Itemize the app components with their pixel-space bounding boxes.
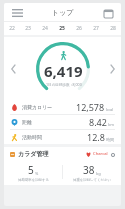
button[interactable]: 22 <box>4 22 20 35</box>
staticText: 活動時間 <box>22 134 42 140</box>
staticText: Charcal <box>93 151 108 157</box>
staticText: 27 <box>93 25 99 32</box>
staticText: 消費カロリー <box>22 104 53 110</box>
staticText: 28 <box>110 25 116 32</box>
button[interactable]: Menu <box>9 5 25 21</box>
staticText: km <box>108 122 114 127</box>
staticText: 体重を記録してください <box>73 178 111 182</box>
staticText: 23 <box>25 25 31 32</box>
button[interactable]: 23 <box>20 22 36 35</box>
staticText: 22 <box>9 25 15 32</box>
staticText: kg <box>96 171 101 176</box>
staticText: カラダ管理 <box>18 150 49 158</box>
button[interactable]: Next day <box>106 63 118 75</box>
staticText: kcal <box>106 107 114 112</box>
button[interactable]: 5 <box>4 161 62 183</box>
staticText: トップ <box>52 8 74 17</box>
button[interactable]: カラダ管理 <box>4 147 121 161</box>
button[interactable]: 24 <box>36 22 53 35</box>
staticText: 8.42 <box>89 116 107 128</box>
button[interactable]: 38 <box>63 161 121 183</box>
button[interactable]: 活動時間 <box>4 130 121 144</box>
button[interactable]: 26 <box>70 22 87 35</box>
staticText: 12,578 <box>76 101 105 113</box>
staticText: 6,419 <box>44 61 83 81</box>
staticText: 26 <box>76 25 82 32</box>
button[interactable]: 消費カロリー <box>4 100 121 114</box>
staticText: 距離 <box>22 119 32 125</box>
button[interactable]: Previous day <box>7 63 19 75</box>
button[interactable]: 距離 <box>4 115 121 129</box>
staticText: 25 <box>59 25 65 32</box>
staticText: 5 <box>28 163 34 177</box>
staticText: 1日の目標歩数 : 8,000 <box>46 82 82 87</box>
staticText: 体脂肪率を記録する <box>18 178 49 182</box>
button[interactable]: 27 <box>87 22 104 35</box>
staticText: 38 <box>83 163 95 177</box>
staticText: 時間 <box>106 137 114 142</box>
staticText: 12.8 <box>87 131 105 143</box>
staticText: 24 <box>42 25 48 32</box>
button[interactable]: Calendar <box>100 5 116 21</box>
button[interactable]: Settings <box>110 152 115 157</box>
staticText: % <box>35 171 39 176</box>
button[interactable]: 28 <box>104 22 121 35</box>
button[interactable]: 25 <box>53 22 70 35</box>
